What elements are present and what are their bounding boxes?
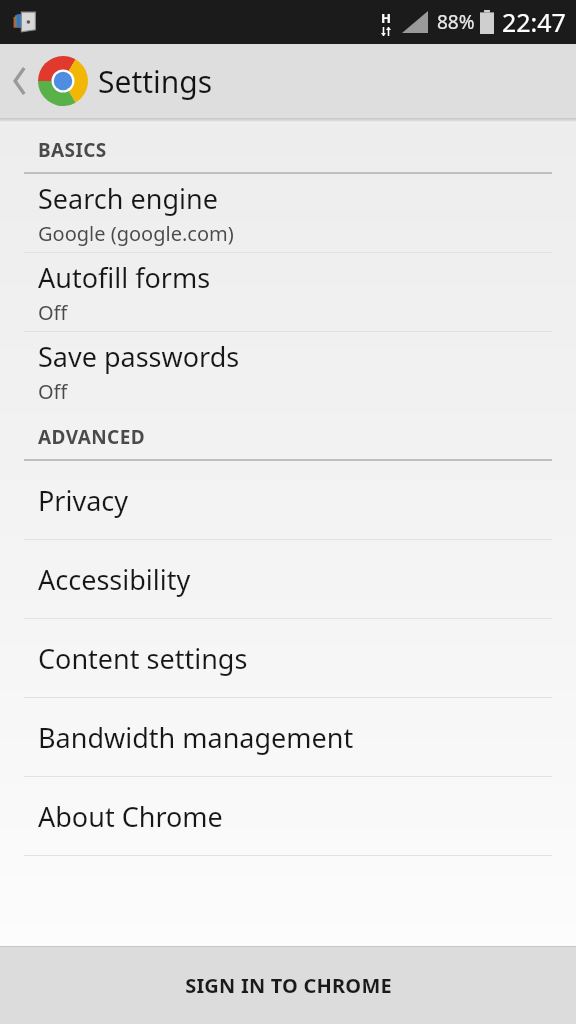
staticText: About Chrome [38,798,223,835]
staticText: 88% [437,9,475,35]
staticText: Bandwidth management [38,719,354,756]
button[interactable]: Save passwords [0,332,576,410]
staticText: H [381,9,391,27]
staticText: ADVANCED [38,424,145,450]
button[interactable]: SIGN IN TO CHROME [0,947,576,1024]
staticText: BASICS [38,137,107,163]
button[interactable]: Search engine [0,174,576,252]
staticText: 22:47 [502,5,566,39]
staticText: Autofill forms [38,259,211,296]
staticText: Off [38,378,68,405]
button[interactable]: Autofill forms [0,253,576,331]
button[interactable]: Back [6,53,34,109]
staticText: Settings [98,61,213,102]
button[interactable]: Privacy [0,461,576,539]
staticText: SIGN IN TO CHROME [185,972,392,999]
staticText: Off [38,299,68,326]
staticText: Search engine [38,180,218,217]
staticText: Privacy [38,482,129,519]
staticText: Save passwords [38,338,240,375]
staticText: Content settings [38,640,248,677]
button[interactable]: Bandwidth management [0,698,576,776]
button[interactable]: About Chrome [0,777,576,855]
button[interactable]: Content settings [0,619,576,697]
staticText: Google (google.com) [38,220,234,247]
button[interactable]: Accessibility [0,540,576,618]
staticText: Accessibility [38,561,191,598]
